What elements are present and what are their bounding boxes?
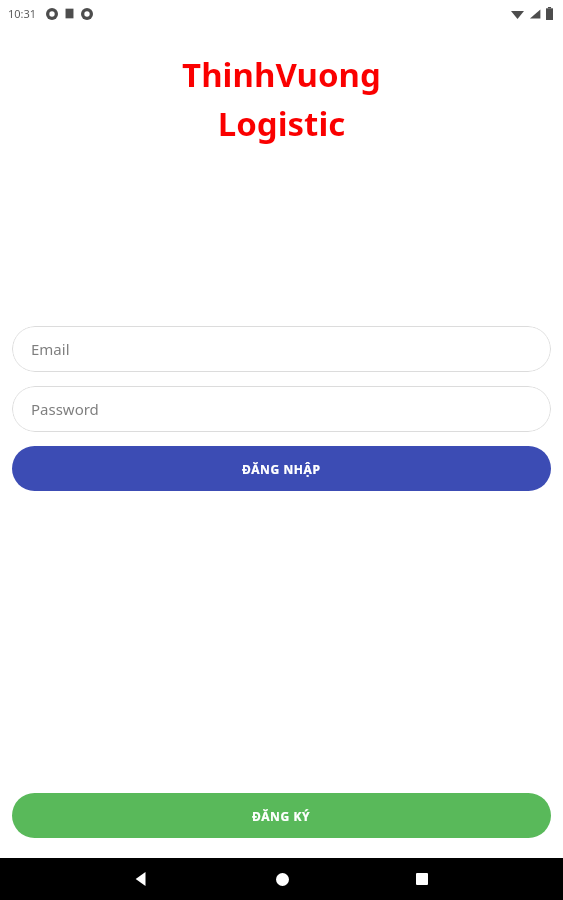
staticText: ThinhVuong xyxy=(0,52,563,97)
button[interactable]: ĐĂNG KÝ xyxy=(12,793,551,838)
button[interactable]: Back xyxy=(120,858,162,900)
staticText: Email xyxy=(31,339,70,359)
staticText: Logistic xyxy=(0,101,563,146)
staticText: ĐĂNG KÝ xyxy=(252,808,311,824)
button[interactable]: Password xyxy=(12,386,551,432)
button[interactable]: ĐĂNG NHẬP xyxy=(12,446,551,491)
button[interactable]: Recent apps xyxy=(401,858,443,900)
staticText: ĐĂNG NHẬP xyxy=(242,461,321,477)
button[interactable]: Home xyxy=(261,858,303,900)
staticText: Password xyxy=(31,399,99,419)
button[interactable]: Email xyxy=(12,326,551,372)
staticText: 10:31 xyxy=(8,6,37,21)
